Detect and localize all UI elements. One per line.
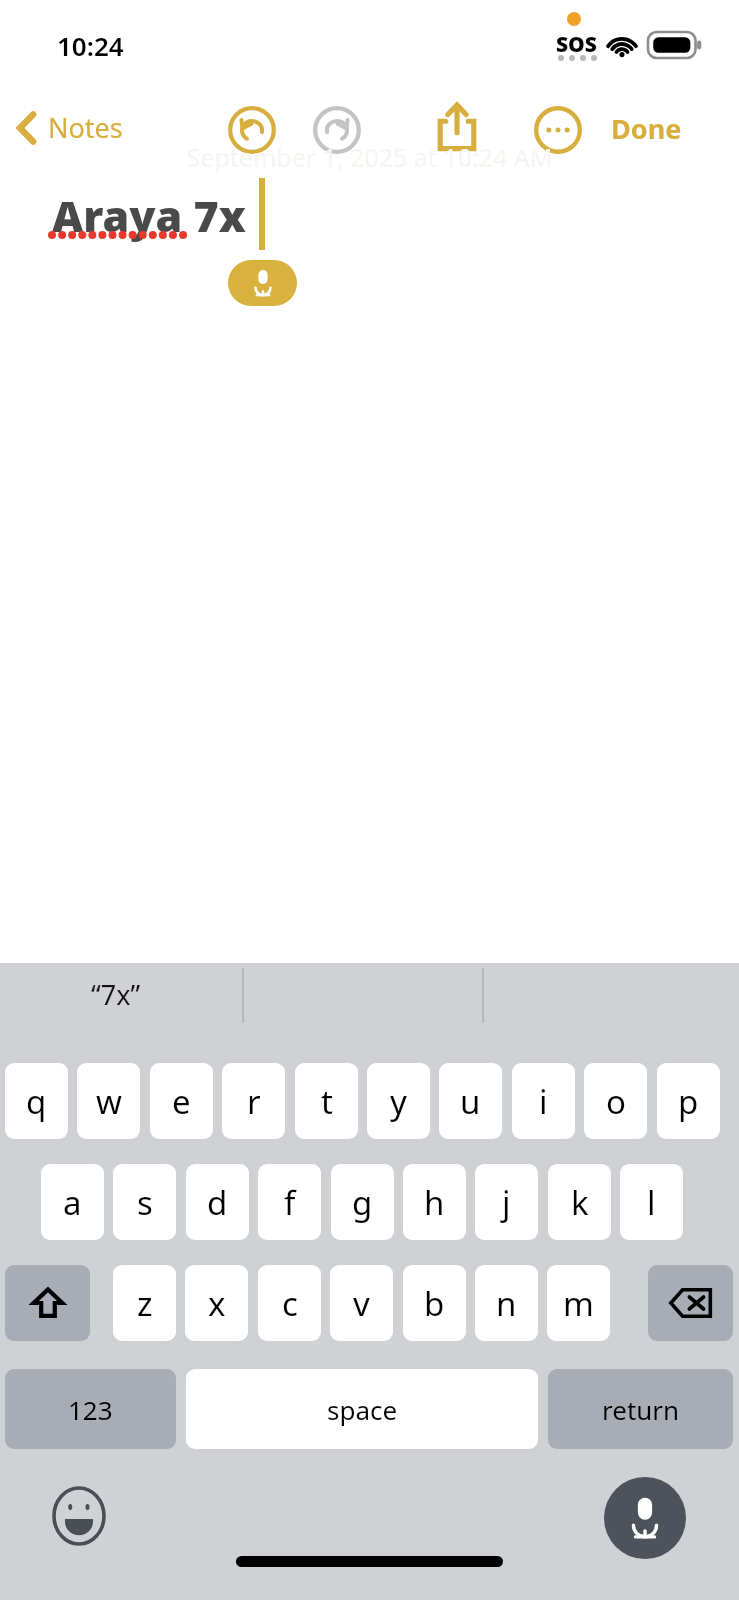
button[interactable]: Undo [226, 104, 278, 156]
staticText: k [571, 1180, 589, 1225]
staticText: space [327, 1392, 398, 1427]
staticText: h [424, 1180, 445, 1225]
staticText: y [390, 1079, 407, 1124]
button[interactable]: “7x” [91, 976, 141, 1013]
button[interactable]: m [547, 1265, 610, 1341]
button[interactable]: c [258, 1265, 321, 1341]
staticText: Araya 7x [52, 186, 246, 245]
staticText: c [282, 1281, 298, 1326]
staticText: v [353, 1281, 370, 1326]
button[interactable]: Emoji [48, 1485, 110, 1547]
button[interactable]: w [77, 1063, 140, 1139]
button[interactable]: space [186, 1369, 538, 1449]
button[interactable]: j [475, 1164, 538, 1240]
button[interactable]: t [295, 1063, 358, 1139]
button[interactable]: Share [430, 100, 484, 154]
staticText: x [208, 1281, 226, 1326]
button[interactable]: Redo [311, 104, 363, 156]
button[interactable]: r [222, 1063, 285, 1139]
staticText: z [137, 1281, 153, 1326]
staticText: r [247, 1079, 261, 1124]
staticText: t [321, 1079, 333, 1124]
staticText: September 1, 2025 at 10:24 AM [0, 140, 739, 174]
button[interactable]: Dictation [604, 1477, 686, 1559]
button[interactable]: return [548, 1369, 733, 1449]
button[interactable]: s [113, 1164, 176, 1240]
staticText: u [460, 1079, 481, 1124]
button[interactable]: Done [605, 104, 688, 153]
button[interactable]: v [330, 1265, 393, 1341]
staticText: f [284, 1180, 296, 1225]
button[interactable]: h [403, 1164, 466, 1240]
staticText: Notes [48, 109, 123, 146]
button[interactable]: o [584, 1063, 647, 1139]
button[interactable]: q [5, 1063, 68, 1139]
button[interactable]: Backspace [648, 1265, 733, 1341]
button[interactable]: n [475, 1265, 538, 1341]
button[interactable]: Dictate [228, 260, 297, 306]
staticText: a [63, 1180, 82, 1225]
staticText: i [539, 1079, 548, 1124]
button[interactable]: i [512, 1063, 575, 1139]
staticText: m [563, 1281, 594, 1326]
staticText: b [424, 1281, 445, 1326]
button[interactable]: a [41, 1164, 104, 1240]
staticText: d [207, 1180, 228, 1225]
staticText: o [606, 1079, 626, 1124]
staticText: Done [611, 110, 682, 147]
button[interactable]: p [657, 1063, 720, 1139]
button[interactable]: y [367, 1063, 430, 1139]
button[interactable]: b [403, 1265, 466, 1341]
button[interactable]: x [185, 1265, 248, 1341]
button[interactable]: g [331, 1164, 394, 1240]
staticText: SOS [556, 30, 597, 59]
button[interactable]: z [113, 1265, 176, 1341]
button[interactable]: u [439, 1063, 502, 1139]
staticText: g [352, 1180, 373, 1225]
button[interactable]: k [548, 1164, 611, 1240]
staticText: j [502, 1180, 511, 1225]
button[interactable]: d [186, 1164, 249, 1240]
button[interactable]: 123 [5, 1369, 176, 1449]
staticText: 123 [68, 1392, 113, 1427]
button[interactable]: More options [532, 104, 584, 156]
staticText: 10:24 [57, 28, 124, 63]
staticText: l [647, 1180, 656, 1225]
staticText: p [678, 1079, 699, 1124]
staticText: q [26, 1079, 47, 1124]
button[interactable]: Notes [10, 103, 129, 152]
button[interactable]: f [258, 1164, 321, 1240]
staticText: n [496, 1281, 517, 1326]
staticText: e [172, 1079, 191, 1124]
button[interactable]: l [620, 1164, 683, 1240]
button[interactable]: Shift [5, 1265, 90, 1341]
staticText: return [602, 1392, 680, 1427]
staticText: w [96, 1079, 122, 1124]
button[interactable]: e [150, 1063, 213, 1139]
staticText: s [137, 1180, 153, 1225]
